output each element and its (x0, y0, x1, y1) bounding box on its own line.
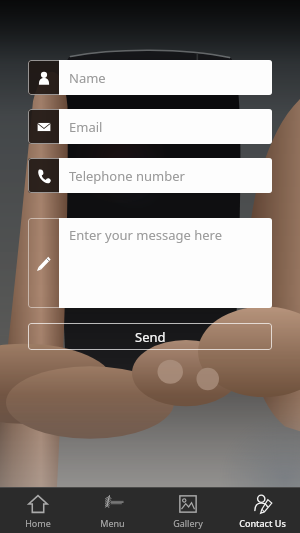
staticText: Gallery (173, 517, 203, 529)
button[interactable]: Telephone number (28, 158, 272, 193)
button[interactable]: Enter your message here (28, 218, 272, 308)
staticText: Telephone number (69, 167, 185, 185)
staticText: Name (69, 69, 106, 87)
button[interactable]: Send (28, 323, 272, 350)
staticText: Enter your message here (69, 226, 223, 244)
button[interactable]: Menu (75, 488, 150, 533)
button[interactable]: Contact Us (225, 488, 300, 533)
staticText: Menu (100, 517, 125, 529)
staticText: Home (25, 517, 51, 529)
staticText: Email (69, 118, 103, 136)
staticText: Send (135, 328, 166, 346)
button[interactable]: Gallery (150, 488, 225, 533)
button[interactable]: Email (28, 109, 272, 144)
button[interactable]: Home (0, 488, 75, 533)
staticText: Contact Us (239, 517, 286, 529)
button[interactable]: Name (28, 60, 272, 95)
